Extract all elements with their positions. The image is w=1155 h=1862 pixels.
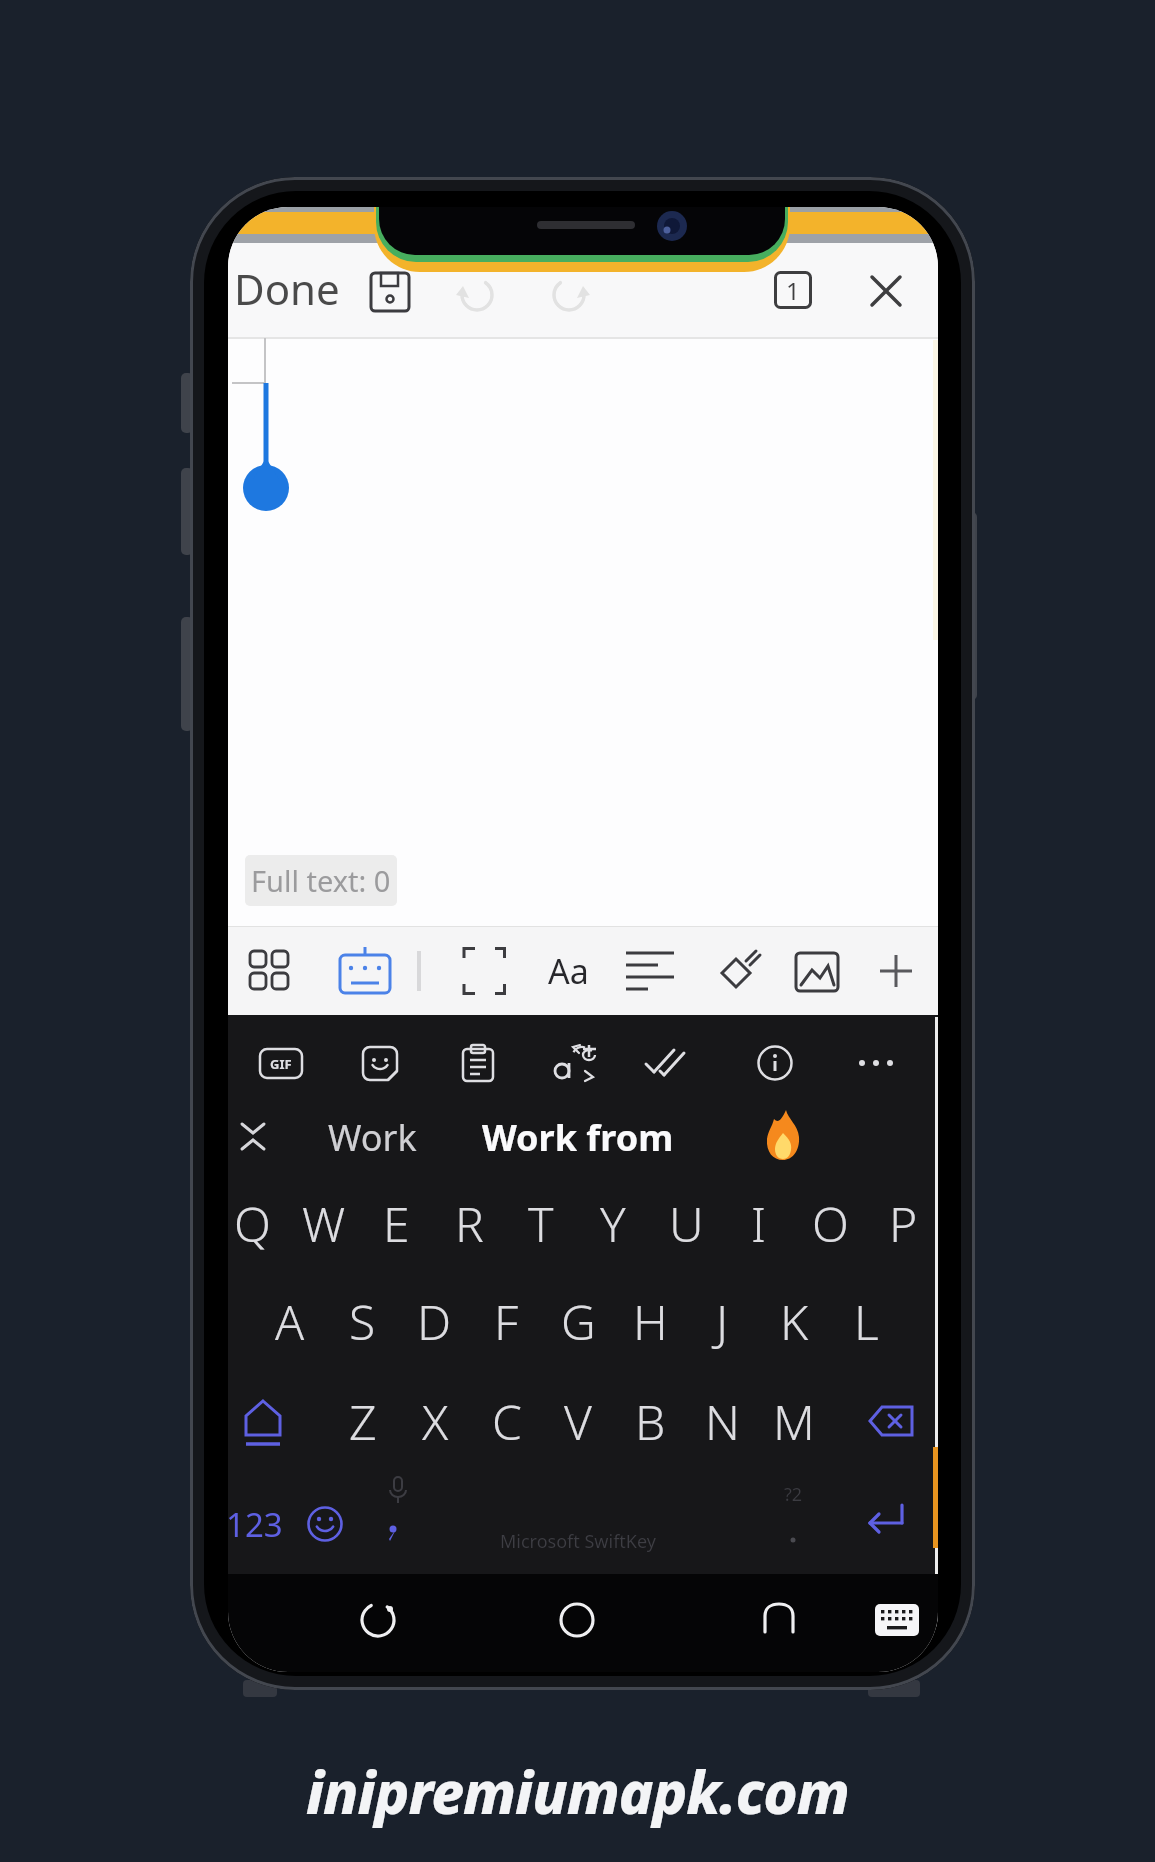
staticText: D [417,1289,452,1354]
staticText: M [773,1389,815,1454]
button[interactable] [238,1122,268,1152]
button[interactable]: I [726,1187,790,1259]
button[interactable] [250,951,290,991]
staticText: Y [600,1191,626,1256]
button[interactable]: P [871,1187,935,1259]
staticText: Q [234,1191,271,1256]
button[interactable]: S [330,1285,394,1357]
button[interactable] [758,1107,808,1163]
staticText: L [854,1289,879,1354]
button[interactable] [875,1604,919,1636]
button[interactable]: B [618,1385,682,1457]
staticText: P [889,1191,918,1256]
button[interactable]: Aa [548,948,589,994]
staticText: O [812,1191,849,1256]
button[interactable] [761,1602,797,1638]
staticText: Aa [548,948,589,994]
button[interactable] [868,1405,914,1437]
button[interactable]: L [834,1285,898,1357]
staticText: R [455,1191,484,1256]
staticText: 123 [228,1502,283,1547]
button[interactable]: Done [234,260,340,317]
button[interactable]: D [402,1285,466,1357]
staticText: Work from [482,1113,674,1162]
button[interactable]: 123 [228,1502,283,1547]
staticText: C [492,1389,522,1454]
button[interactable] [872,277,900,305]
button[interactable] [644,1047,686,1079]
button[interactable] [716,949,762,995]
staticText: G [561,1289,596,1354]
button[interactable] [626,951,674,991]
button[interactable] [243,1399,283,1449]
button[interactable] [362,1045,399,1082]
staticText: inipremiumapk.com [306,1752,849,1831]
button[interactable]: T [509,1187,573,1259]
staticText: T [528,1191,554,1256]
button[interactable]: GIF [259,1048,303,1079]
button[interactable]: Microsoft SwiftKey [500,1529,656,1554]
staticText: 1 [786,274,800,307]
button[interactable] [880,955,912,987]
button[interactable] [864,1503,908,1539]
staticText: Z [349,1389,377,1454]
button[interactable]: N [690,1385,754,1457]
staticText: N [705,1389,740,1454]
button[interactable]: Z [331,1385,395,1457]
button[interactable] [464,947,506,995]
staticText: V [564,1389,592,1454]
button[interactable] [559,1602,595,1638]
staticText: Work [328,1113,417,1162]
button[interactable]: V [546,1385,610,1457]
button[interactable] [553,1043,599,1085]
staticText: I [751,1191,766,1256]
staticText: J [716,1289,729,1354]
button[interactable]: F [474,1285,538,1357]
button[interactable] [368,270,412,314]
button[interactable]: J [690,1285,754,1357]
staticText: E [383,1191,410,1256]
button[interactable]: M [762,1385,826,1457]
staticText: A [275,1289,305,1354]
staticText: S [349,1289,376,1354]
staticText: Full text: 0 [251,861,391,900]
button[interactable]: G [546,1285,610,1357]
button[interactable]: X [403,1385,467,1457]
button[interactable] [386,1525,400,1545]
button[interactable]: U [654,1187,718,1259]
staticText: K [780,1289,809,1354]
staticText: F [494,1289,519,1354]
button[interactable]: 1 [774,271,812,309]
button[interactable] [462,1045,494,1082]
staticText: H [633,1289,668,1354]
staticText: U [669,1191,704,1256]
staticText: Done [234,260,340,317]
button[interactable] [456,270,500,314]
staticText: W [302,1191,346,1256]
button[interactable] [796,953,838,991]
button[interactable] [757,1045,793,1081]
staticText: B [635,1389,666,1454]
button[interactable] [546,270,590,314]
staticText: Microsoft SwiftKey [500,1529,656,1554]
button[interactable]: A [258,1285,322,1357]
button[interactable]: Work from [482,1113,674,1162]
button[interactable]: C [475,1385,539,1457]
button[interactable]: R [437,1187,501,1259]
button[interactable]: Y [581,1187,645,1259]
button[interactable] [307,1506,343,1542]
button[interactable]: Work [328,1113,417,1162]
button[interactable]: W [292,1187,356,1259]
staticText: GIF [270,1055,292,1073]
button[interactable]: H [618,1285,682,1357]
button[interactable]: E [364,1187,428,1259]
button[interactable] [340,945,390,995]
button[interactable]: O [798,1187,862,1259]
button[interactable] [858,1059,894,1067]
button[interactable]: K [762,1285,826,1357]
staticText: ?2 [784,1482,803,1507]
staticText: X [422,1389,449,1454]
button[interactable] [360,1602,396,1638]
button[interactable]: Q [228,1187,284,1259]
